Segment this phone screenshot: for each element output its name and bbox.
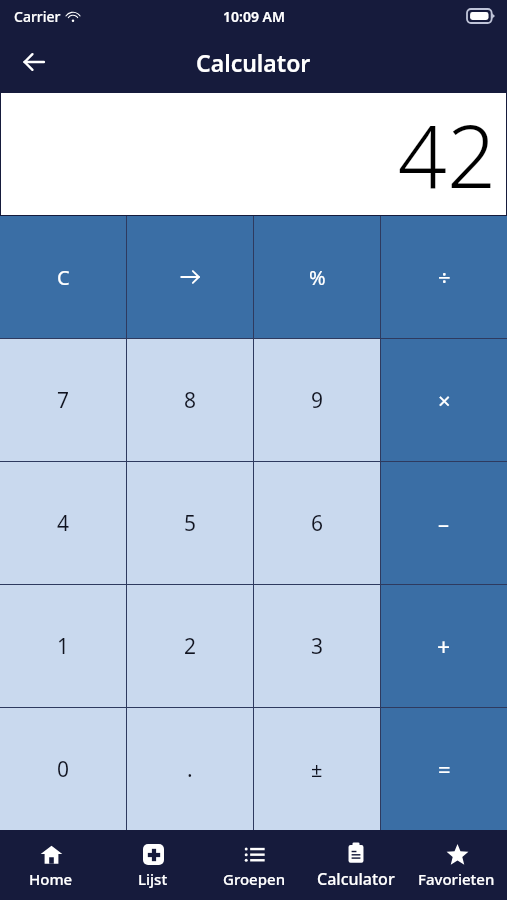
staticText: Calculator (196, 47, 311, 78)
button[interactable]: C (0, 216, 126, 338)
button[interactable]: ÷ (381, 216, 507, 338)
staticText: 9 (311, 386, 324, 415)
button[interactable]: Lijst (102, 830, 204, 900)
button[interactable]: 6 (254, 462, 380, 584)
staticText: 0 (57, 755, 70, 784)
staticText: ± (311, 756, 323, 783)
button[interactable]: % (254, 216, 380, 338)
button[interactable]: = (381, 708, 507, 830)
staticText: 6 (311, 509, 324, 538)
button[interactable]: Back (8, 36, 60, 88)
staticText: 1 (57, 632, 70, 661)
button[interactable]: 8 (127, 339, 253, 461)
staticText: . (187, 755, 193, 784)
button[interactable]: – (381, 462, 507, 584)
staticText: = (438, 754, 451, 784)
button[interactable]: 9 (254, 339, 380, 461)
button[interactable]: Favorieten (406, 830, 507, 900)
staticText: 42 (397, 96, 496, 213)
staticText: Lijst (138, 869, 168, 889)
staticText: 2 (184, 632, 197, 661)
staticText: Carrier (14, 7, 61, 26)
staticText: 10:09 AM (223, 7, 285, 26)
button[interactable]: + (381, 585, 507, 707)
button[interactable]: 0 (0, 708, 126, 830)
button[interactable]: 2 (127, 585, 253, 707)
staticText: 3 (311, 632, 324, 661)
staticText: × (438, 385, 451, 415)
staticText: – (438, 508, 450, 538)
button[interactable]: 3 (254, 585, 380, 707)
button[interactable]: 5 (127, 462, 253, 584)
staticText: 8 (184, 386, 197, 415)
staticText: ÷ (438, 262, 451, 292)
staticText: C (57, 264, 70, 291)
button[interactable]: Calculator (305, 830, 406, 900)
staticText: 5 (184, 509, 197, 538)
button[interactable]: ± (254, 708, 380, 830)
button[interactable]: . (127, 708, 253, 830)
button[interactable]: 7 (0, 339, 126, 461)
button[interactable]: 1 (0, 585, 126, 707)
staticText: + (437, 631, 451, 662)
staticText: Calculator (317, 868, 395, 890)
staticText: 4 (57, 509, 70, 538)
staticText: Groepen (223, 869, 286, 889)
staticText: 7 (57, 386, 70, 415)
button[interactable]: 4 (0, 462, 126, 584)
button[interactable]: × (381, 339, 507, 461)
button[interactable]: Backspace (127, 216, 253, 338)
button[interactable]: Home (0, 830, 102, 900)
staticText: Favorieten (418, 869, 495, 889)
staticText: % (309, 264, 326, 291)
button[interactable]: Groepen (204, 830, 305, 900)
staticText: Home (29, 869, 73, 889)
